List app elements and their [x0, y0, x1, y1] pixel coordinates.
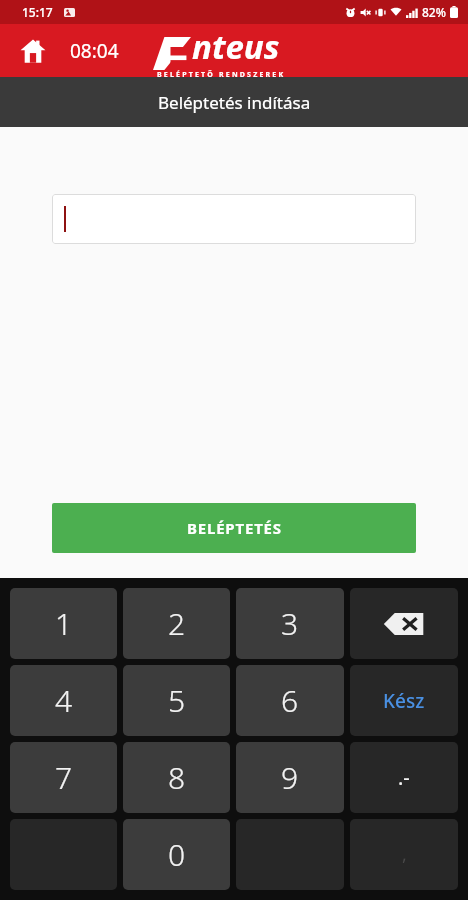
- staticText: 9: [281, 757, 299, 798]
- button[interactable]: BELÉPTETÉS: [52, 503, 416, 553]
- staticText: 6: [281, 680, 299, 721]
- button[interactable]: Kód beviteli mező: [52, 194, 416, 244]
- staticText: 15:17: [22, 4, 53, 20]
- staticText: 7: [55, 757, 73, 798]
- button[interactable]: .-: [350, 742, 458, 813]
- staticText: Beléptetés indítása: [158, 91, 311, 114]
- staticText: nteus: [192, 24, 280, 69]
- button[interactable]: Home: [14, 32, 52, 70]
- staticText: 2: [168, 603, 186, 644]
- button[interactable]: Backspace: [350, 588, 458, 659]
- staticText: 5: [168, 680, 186, 721]
- staticText: .-: [398, 764, 410, 791]
- button[interactable]: 6: [236, 665, 344, 736]
- button[interactable]: 8: [123, 742, 230, 813]
- staticText: Kész: [383, 688, 425, 714]
- button[interactable]: 9: [236, 742, 344, 813]
- button[interactable]: Kész: [350, 665, 458, 736]
- staticText: BELÉPTETÉS: [187, 518, 282, 538]
- button[interactable]: 1: [10, 588, 117, 659]
- staticText: 0: [168, 834, 186, 875]
- staticText: BELÉPTETŐ RENDSZEREK: [157, 70, 286, 77]
- staticText: 1: [55, 603, 73, 644]
- staticText: 8: [168, 757, 186, 798]
- button[interactable]: 7: [10, 742, 117, 813]
- button[interactable]: 5: [123, 665, 230, 736]
- staticText: 82%: [422, 4, 446, 20]
- staticText: 3: [281, 603, 299, 644]
- staticText: 08:04: [70, 38, 119, 64]
- button[interactable]: 2: [123, 588, 230, 659]
- staticText: ,: [402, 842, 407, 867]
- button[interactable]: 0: [123, 819, 230, 890]
- button[interactable]: 3: [236, 588, 344, 659]
- button[interactable]: 4: [10, 665, 117, 736]
- staticText: 4: [55, 680, 73, 721]
